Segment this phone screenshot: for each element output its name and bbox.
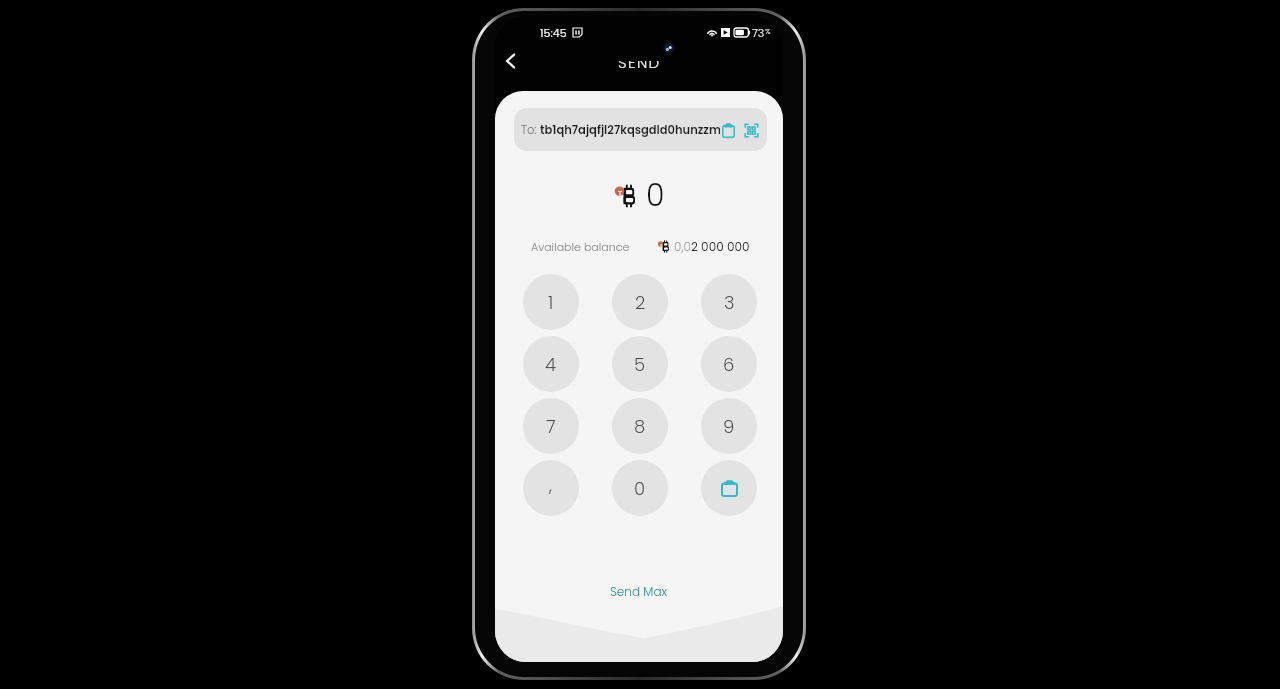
- button[interactable]: 5: [612, 336, 668, 392]
- button[interactable]: 3: [701, 274, 757, 330]
- staticText: T: [660, 242, 663, 247]
- staticText: 73: [752, 25, 765, 40]
- button[interactable]: Send Max: [596, 578, 682, 605]
- button[interactable]: ,: [523, 460, 579, 516]
- staticText: %: [765, 26, 771, 36]
- button[interactable]: Paste address: [720, 122, 736, 138]
- staticText: 2: [635, 290, 646, 315]
- staticText: 5: [634, 352, 646, 377]
- button[interactable]: 6: [701, 336, 757, 392]
- button[interactable]: 7: [523, 398, 579, 454]
- button[interactable]: 1: [523, 274, 579, 330]
- staticText: tb1qh7ajqfjl27kqsgdld0hunzzmnqr: [540, 122, 720, 138]
- staticText: 15:45: [540, 25, 567, 40]
- staticText: 9: [723, 414, 735, 439]
- staticText: To:: [521, 122, 540, 138]
- staticText: 3: [724, 290, 735, 315]
- staticText: Available balance: [531, 239, 630, 254]
- button[interactable]: Back: [495, 46, 525, 76]
- button[interactable]: 4: [523, 336, 579, 392]
- button[interactable]: Paste amount: [701, 460, 757, 516]
- staticText: 0: [634, 476, 646, 501]
- staticText: 1: [548, 290, 554, 315]
- button[interactable]: Scan QR code: [743, 122, 759, 138]
- staticText: 7: [546, 414, 556, 439]
- staticText: 0: [646, 175, 665, 217]
- staticText: 0,0: [674, 238, 691, 255]
- button[interactable]: 0: [612, 460, 668, 516]
- button[interactable]: To:: [514, 108, 767, 151]
- staticText: 6: [723, 352, 735, 377]
- staticText: 8: [634, 414, 646, 439]
- staticText: Send Max: [610, 583, 668, 600]
- button[interactable]: 8: [612, 398, 668, 454]
- staticText: T: [618, 188, 623, 198]
- staticText: 2 000 000: [691, 238, 750, 255]
- button[interactable]: 2: [612, 274, 668, 330]
- staticText: SEND: [618, 52, 661, 73]
- staticText: ,: [549, 472, 553, 497]
- button[interactable]: 9: [701, 398, 757, 454]
- other: Paste amount: [720, 479, 738, 497]
- staticText: 4: [545, 352, 557, 377]
